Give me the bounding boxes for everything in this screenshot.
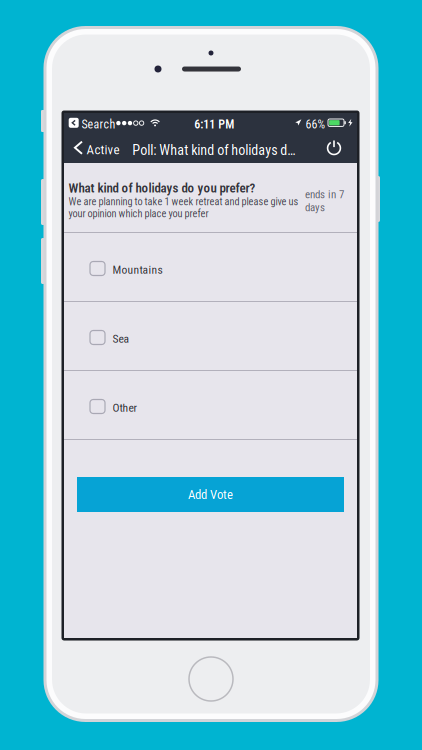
staticText: 66% <box>306 117 326 131</box>
staticText: Search <box>81 117 115 131</box>
button[interactable]: Active <box>64 133 120 163</box>
button[interactable]: Power <box>319 133 349 163</box>
button[interactable]: Sea <box>64 302 357 370</box>
staticText: Other <box>112 401 137 415</box>
button[interactable]: Other <box>64 371 357 439</box>
button[interactable]: Add Vote <box>77 477 344 512</box>
staticText: 6:11 PM <box>194 117 234 131</box>
staticText: Poll: What kind of holidays d… <box>132 142 295 158</box>
staticText: Mountains <box>112 263 162 277</box>
staticText: Sea <box>112 332 129 346</box>
staticText: Add Vote <box>188 487 233 502</box>
button[interactable]: Mountains <box>64 233 357 301</box>
staticText: Active <box>87 142 120 157</box>
staticText: What kind of holidays do you prefer? <box>68 180 255 196</box>
staticText: ends in 7 days <box>305 188 344 214</box>
staticText: We are planning to take 1 week retreat a… <box>68 196 298 220</box>
